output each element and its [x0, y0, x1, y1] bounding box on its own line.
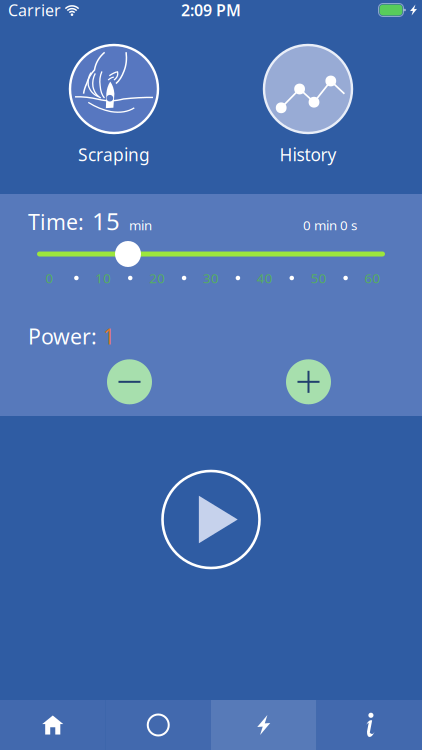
button[interactable]: Home	[0, 700, 105, 750]
staticText: 10	[95, 269, 111, 287]
staticText: Time:	[28, 208, 84, 236]
staticText: 50	[311, 269, 327, 287]
button[interactable]: Decrease power	[107, 359, 152, 404]
button[interactable]: Scraping	[34, 45, 194, 166]
staticText: 30	[203, 269, 219, 287]
staticText: 1	[103, 322, 115, 350]
staticText: Power:	[28, 322, 103, 350]
button[interactable]: Start	[162, 471, 259, 568]
staticText: 20	[149, 269, 165, 287]
button[interactable]: Info	[316, 700, 422, 750]
button[interactable]: History	[228, 45, 388, 166]
staticText: 60	[364, 269, 380, 287]
staticText: 15	[92, 205, 120, 237]
button[interactable]: Timer	[105, 700, 211, 750]
staticText: 40	[257, 269, 273, 287]
staticText: Scraping	[78, 143, 150, 166]
staticText: 2:09 PM	[181, 0, 241, 21]
staticText: History	[279, 143, 336, 166]
button[interactable]: Increase power	[286, 359, 331, 404]
staticText: 0	[45, 269, 53, 287]
staticText: min	[129, 216, 152, 234]
button[interactable]: Power	[211, 700, 316, 750]
staticText: Carrier	[8, 0, 61, 21]
staticText: 0 min 0 s	[303, 216, 357, 234]
